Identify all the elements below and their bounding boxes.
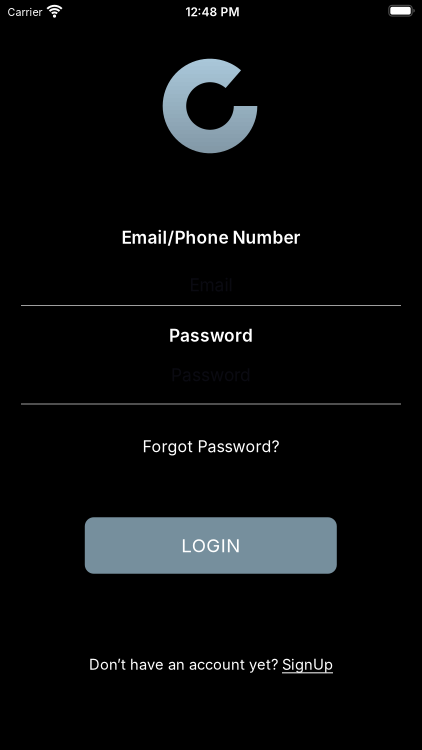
staticText: LOGIN [181, 534, 240, 556]
staticText: Forgot Password? [142, 437, 279, 456]
staticText: Don’t have an account yet? [89, 656, 278, 673]
staticText: Email [189, 275, 232, 295]
button[interactable]: Forgot Password? [142, 437, 279, 456]
staticText: Password [169, 325, 253, 346]
button[interactable]: SignUp [282, 656, 333, 673]
staticText: Carrier [7, 6, 42, 18]
staticText: SignUp [282, 656, 333, 673]
staticText: Password [171, 365, 251, 385]
staticText: 12:48 PM [185, 5, 239, 19]
staticText: Email/Phone Number [121, 227, 300, 248]
button[interactable]: LOGIN [85, 517, 337, 574]
